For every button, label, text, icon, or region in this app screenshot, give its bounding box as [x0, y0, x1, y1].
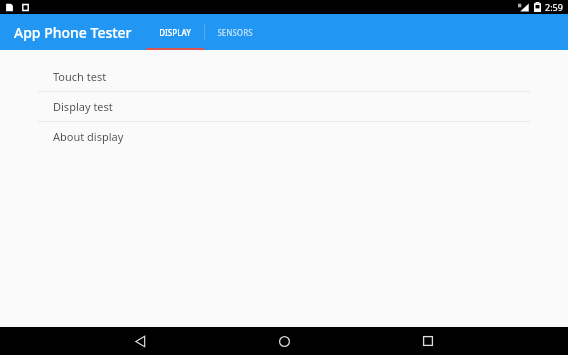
staticText: Display test: [53, 99, 113, 114]
button[interactable]: Back: [120, 327, 160, 355]
staticText: Touch test: [53, 69, 107, 84]
staticText: DISPLAY: [159, 27, 191, 38]
button[interactable]: Display test: [0, 92, 568, 121]
button[interactable]: Touch test: [0, 62, 568, 91]
button[interactable]: DISPLAY: [146, 14, 204, 50]
staticText: App Phone Tester: [14, 23, 132, 42]
button[interactable]: SENSORS: [205, 14, 265, 50]
button[interactable]: Recent apps: [408, 327, 448, 355]
staticText: About display: [53, 129, 124, 144]
staticText: 2:59: [545, 1, 563, 13]
staticText: SENSORS: [217, 27, 253, 38]
button[interactable]: About display: [0, 122, 568, 151]
button[interactable]: Home: [264, 327, 304, 355]
